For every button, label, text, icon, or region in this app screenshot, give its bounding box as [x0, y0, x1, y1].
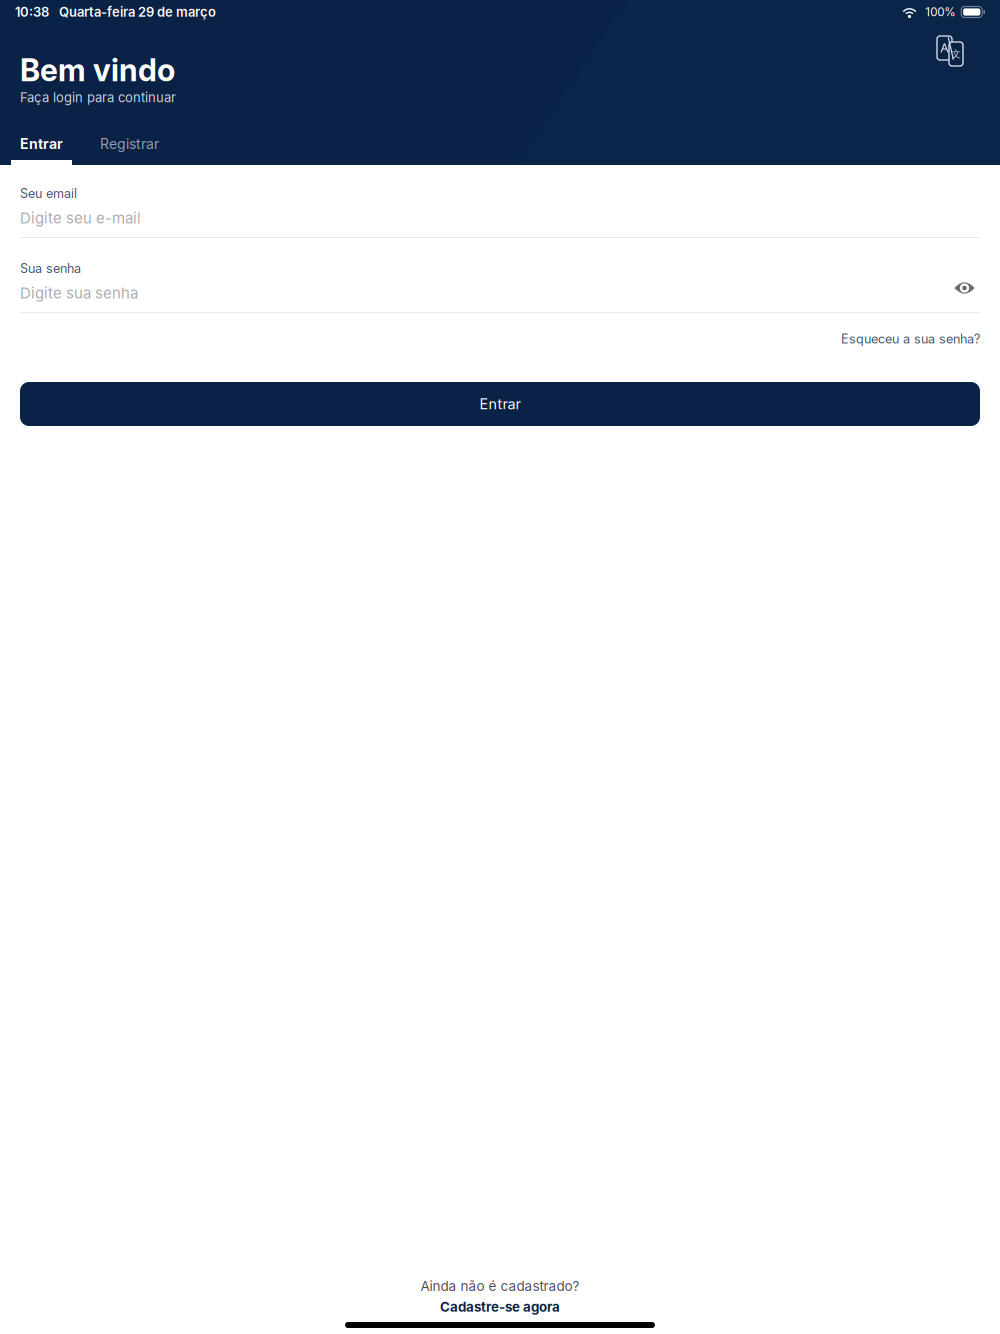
button[interactable]: Cadastre-se agora — [430, 1294, 570, 1315]
staticText: Quarta-feira 29 de março — [59, 4, 216, 20]
button[interactable]: Entrar — [20, 382, 980, 426]
staticText: Faça login para continuar — [20, 90, 176, 105]
staticText: 10:38 — [15, 4, 49, 20]
staticText: Digite seu e-mail — [20, 209, 141, 227]
staticText: Digite sua senha — [20, 284, 138, 302]
staticText: Registrar — [100, 135, 159, 152]
staticText: 100% — [925, 5, 955, 19]
staticText: Ainda não é cadastrado? — [420, 1278, 579, 1294]
button[interactable]: Traduzir idioma — [929, 28, 972, 74]
staticText: Seu email — [20, 186, 77, 201]
staticText: Cadastre-se agora — [440, 1299, 560, 1315]
staticText: 文 — [951, 48, 961, 60]
staticText: Sua senha — [20, 261, 81, 276]
button[interactable]: Esqueceu a sua senha? — [841, 328, 980, 350]
staticText: Entrar — [20, 135, 63, 152]
button[interactable]: Entrar — [10, 137, 73, 165]
button[interactable]: Mostrar senha — [949, 281, 980, 305]
button[interactable]: Digite sua senha — [20, 283, 949, 303]
staticText: Entrar — [479, 395, 520, 413]
staticText: Esqueceu a sua senha? — [841, 331, 980, 347]
staticText: Bem vindo — [20, 51, 175, 88]
button[interactable]: Registrar — [88, 137, 171, 165]
button[interactable]: Digite seu e-mail — [20, 208, 980, 228]
